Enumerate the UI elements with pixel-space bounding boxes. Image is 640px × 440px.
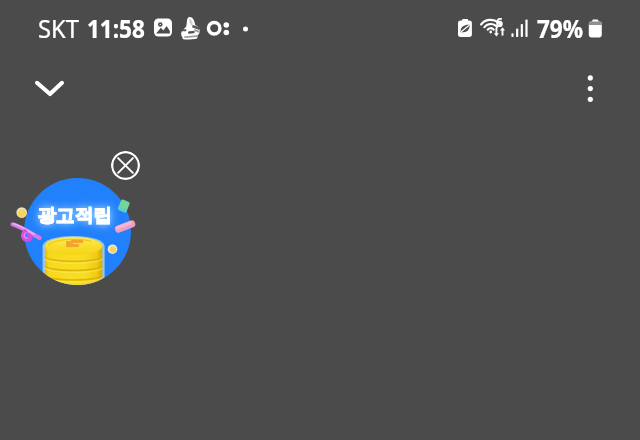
staticText: 79% <box>537 11 584 45</box>
staticText: SKT <box>38 11 80 45</box>
button[interactable]: Close ad <box>111 151 140 180</box>
button[interactable]: Collapse <box>25 65 73 113</box>
staticText: 광고적립 <box>37 204 112 228</box>
button[interactable]: 광고적립 ad reward <box>24 178 131 285</box>
staticText: 11:58 <box>87 11 145 45</box>
button[interactable]: More options <box>566 65 614 113</box>
staticText: 광고적립 <box>37 204 112 228</box>
staticText: 6 <box>496 14 503 30</box>
